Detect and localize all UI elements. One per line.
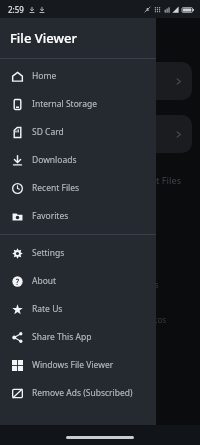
- staticText: Recent Files: [32, 182, 80, 194]
- button[interactable]: Recent Files: [0, 174, 156, 202]
- button[interactable]: Settings: [0, 239, 156, 267]
- button[interactable]: Rate Us: [0, 295, 156, 323]
- staticText: Photos: [140, 314, 167, 325]
- staticText: Home: [32, 70, 57, 82]
- button[interactable]: SD Card: [0, 118, 156, 146]
- staticText: SD Card: [32, 126, 64, 138]
- staticText: Remove Ads (Subscribed): [32, 387, 133, 399]
- staticText: Favorites: [32, 210, 69, 222]
- button[interactable]: Downloads: [0, 146, 156, 174]
- staticText: Settings: [32, 247, 65, 259]
- staticText: About: [32, 275, 57, 287]
- staticText: Files: [142, 279, 159, 290]
- staticText: Share This App: [32, 331, 92, 343]
- staticText: Internal Storage: [32, 98, 97, 110]
- staticText: Recent Files: [130, 174, 182, 186]
- button[interactable]: Favorites: [0, 202, 156, 230]
- staticText: File Viewer: [10, 29, 77, 47]
- button[interactable]: Home: [0, 62, 156, 90]
- staticText: Windows File Viewer: [32, 359, 114, 371]
- staticText: Rate Us: [32, 303, 63, 315]
- button[interactable]: About: [0, 267, 156, 295]
- button[interactable]: Remove Ads (Subscribed): [0, 379, 156, 407]
- button[interactable]: [108, 115, 192, 153]
- button[interactable]: [108, 62, 192, 100]
- staticText: Downloads: [32, 154, 77, 166]
- staticText: 2:59: [8, 4, 24, 15]
- button[interactable]: Windows File Viewer: [0, 351, 156, 379]
- button[interactable]: Share This App: [0, 323, 156, 351]
- button[interactable]: Internal Storage: [0, 90, 156, 118]
